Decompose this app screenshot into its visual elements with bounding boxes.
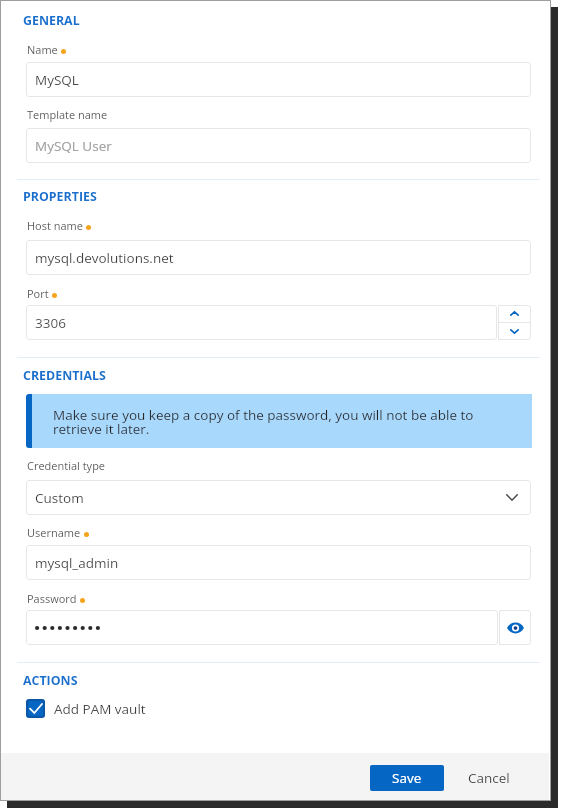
- button[interactable]: 3306: [26, 305, 497, 340]
- staticText: mysql.devolutions.net: [35, 249, 174, 267]
- staticText: CREDENTIALS: [23, 367, 106, 384]
- staticText: ACTIONS: [23, 672, 78, 689]
- staticText: Password: [27, 591, 77, 606]
- staticText: Template name: [27, 107, 108, 122]
- staticText: Name: [27, 42, 58, 57]
- button[interactable]: Cancel: [461, 765, 517, 791]
- staticText: mysql_admin: [35, 554, 119, 572]
- staticText: Username: [27, 525, 81, 540]
- button[interactable]: Show password: [499, 610, 531, 645]
- staticText: MySQL User: [35, 137, 112, 155]
- staticText: Cancel: [468, 769, 510, 787]
- button[interactable]: mysql.devolutions.net: [26, 240, 531, 275]
- button[interactable]: [26, 610, 498, 645]
- staticText: Custom: [35, 489, 84, 507]
- staticText: MySQL: [35, 71, 79, 89]
- button[interactable]: Increase port: [498, 305, 531, 322]
- staticText: Port: [27, 286, 49, 301]
- button[interactable]: mysql_admin: [26, 545, 531, 580]
- button[interactable]: Custom: [26, 480, 531, 515]
- staticText: Credential type: [27, 458, 106, 473]
- staticText: Add PAM vault: [54, 700, 146, 718]
- staticText: Host name: [27, 218, 83, 233]
- staticText: PROPERTIES: [23, 188, 97, 205]
- staticText: Save: [392, 769, 422, 787]
- button[interactable]: Add PAM vault: [26, 699, 146, 718]
- button[interactable]: Save: [370, 765, 444, 791]
- staticText: 3306: [35, 314, 66, 332]
- staticText: GENERAL: [23, 12, 80, 29]
- staticText: Make sure you keep a copy of the passwor…: [53, 406, 500, 437]
- button[interactable]: MySQL User: [26, 128, 531, 163]
- button[interactable]: MySQL: [26, 62, 531, 97]
- button[interactable]: Decrease port: [498, 323, 531, 340]
